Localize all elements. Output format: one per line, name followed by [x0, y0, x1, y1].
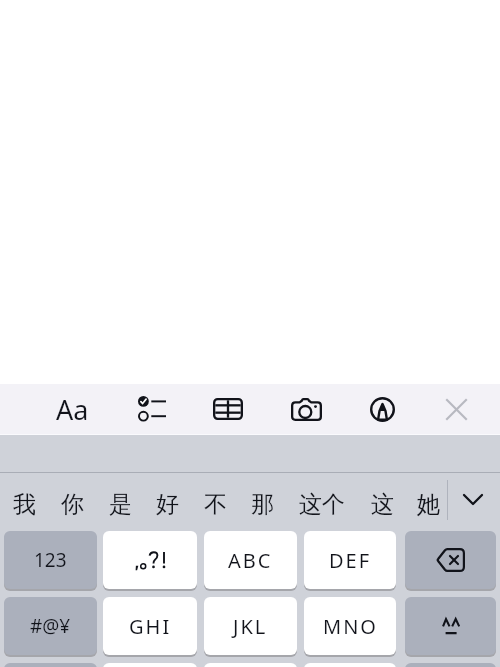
button[interactable]: 她 [407, 473, 449, 525]
button[interactable]: DEF [304, 531, 396, 589]
button[interactable]: GHI [103, 597, 197, 655]
button[interactable]: ABC [4, 663, 97, 667]
button[interactable]: More suggestions [449, 473, 497, 525]
staticText: MNO [323, 613, 378, 640]
staticText: 你 [61, 490, 84, 519]
staticText: DEF [329, 547, 372, 574]
button[interactable]: 那 [241, 473, 283, 525]
button[interactable]: 这个 [293, 473, 351, 525]
staticText: Aa [56, 391, 89, 428]
button[interactable]: Table [203, 384, 253, 434]
button[interactable]: 123 [4, 531, 97, 589]
button[interactable]: ABC [204, 531, 297, 589]
staticText: 我 [13, 490, 36, 519]
button[interactable]: Return [405, 663, 496, 667]
button[interactable]: MNO [304, 597, 396, 655]
staticText: #@¥ [30, 613, 71, 639]
staticText: JKL [233, 613, 268, 640]
button[interactable]: JKL [204, 597, 297, 655]
button[interactable]: 这 [361, 473, 403, 525]
button[interactable]: 我 [3, 473, 45, 525]
button[interactable]: Markup [357, 384, 407, 434]
staticText: 这个 [299, 490, 345, 519]
button[interactable]: Return [405, 597, 496, 655]
button[interactable]: 不 [194, 473, 236, 525]
staticText: ABC [228, 547, 273, 574]
staticText: 这 [371, 490, 394, 519]
staticText: 不 [204, 490, 227, 519]
button[interactable]: #@¥ [4, 597, 97, 655]
staticText: GHI [129, 613, 172, 640]
button[interactable]: Close [431, 384, 481, 434]
staticText: 是 [109, 490, 132, 519]
button[interactable]: Camera [281, 384, 331, 434]
button[interactable]: WXYZ [304, 663, 396, 667]
button[interactable]: Return [103, 531, 197, 589]
button[interactable]: Text format [47, 384, 97, 434]
button[interactable]: 是 [99, 473, 141, 525]
button[interactable]: Backspace [405, 531, 496, 589]
button[interactable]: TUV [204, 663, 297, 667]
button[interactable]: Checklist [127, 384, 177, 434]
staticText: 那 [251, 490, 274, 519]
button[interactable]: 好 [146, 473, 188, 525]
staticText: 好 [156, 490, 179, 519]
staticText: 她 [417, 490, 440, 519]
button[interactable]: 你 [51, 473, 93, 525]
staticText: 123 [34, 547, 67, 573]
button[interactable]: PQRS [103, 663, 197, 667]
